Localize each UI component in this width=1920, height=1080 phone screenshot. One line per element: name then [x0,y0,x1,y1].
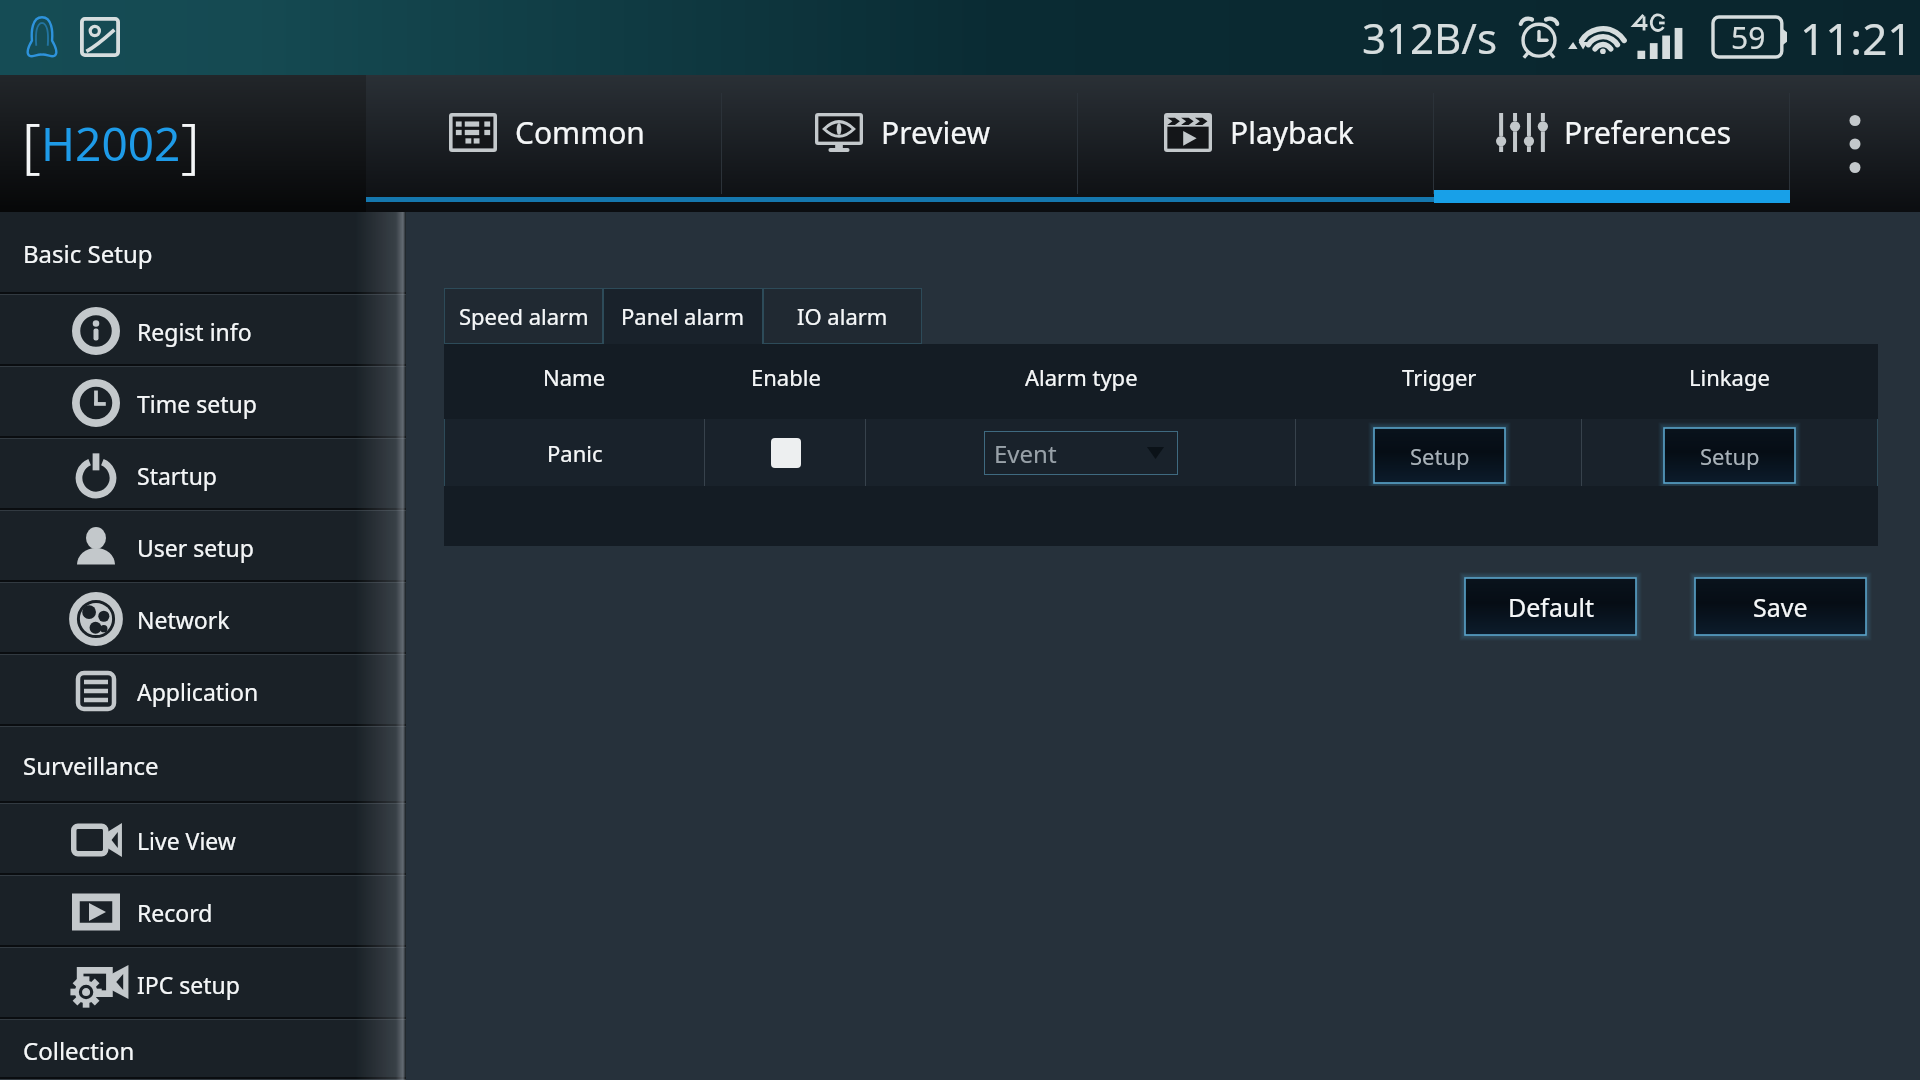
button[interactable]: IPC setup [0,948,406,1020]
button[interactable]: Default [1459,572,1642,641]
staticText: User setup [137,532,254,563]
staticText: [ [22,104,41,183]
staticText: H2002 [41,112,181,175]
staticText: Save [1753,590,1808,624]
staticText: Name [543,362,606,392]
button[interactable]: Alarm type Event [984,431,1178,475]
staticText: Preview [881,112,991,153]
staticText: Speed alarm [459,301,589,331]
button[interactable]: Setup [1658,422,1801,489]
button[interactable]: Application [0,655,406,727]
staticText: ] [181,104,200,183]
staticText: 312B/s [1362,9,1498,66]
button[interactable]: [ [0,75,366,212]
button[interactable]: Save [1689,572,1872,641]
button[interactable]: User setup [0,511,406,583]
button[interactable]: Speed alarm [444,288,603,344]
button[interactable]: Preview [722,75,1078,212]
staticText: IO alarm [797,301,888,331]
button[interactable]: Collection [0,1020,406,1080]
staticText: Enable [751,362,821,392]
staticText: Panic [547,438,603,468]
staticText: Surveillance [23,749,159,782]
staticText: Common [515,112,645,153]
staticText: Network [137,604,230,635]
button[interactable]: Record [0,876,406,948]
button[interactable]: IO alarm [763,288,922,344]
button[interactable]: Surveillance [0,727,406,804]
button[interactable]: Enable Panic alarm [771,438,801,468]
staticText: Record [137,897,213,928]
button[interactable]: Startup [0,439,406,511]
staticText: Panel alarm [621,301,745,331]
staticText: Basic Setup [23,237,153,270]
staticText: Setup [1410,441,1470,471]
button[interactable]: Live View [0,804,406,876]
staticText: Collection [23,1034,135,1067]
staticText: Live View [137,825,236,856]
staticText: 59 [1731,17,1766,57]
staticText: Regist info [137,316,252,347]
staticText: Default [1508,590,1594,624]
staticText: Preferences [1564,112,1732,153]
staticText: Alarm type [1025,362,1138,392]
staticText: Application [137,676,259,707]
button[interactable]: Time setup [0,367,406,439]
staticText: Trigger [1402,362,1477,392]
staticText: IPC setup [137,969,240,1000]
button[interactable]: Basic Setup [0,212,406,295]
button[interactable]: Regist info [0,295,406,367]
staticText: Linkage [1689,362,1770,392]
button[interactable]: More options [1790,75,1920,212]
button[interactable]: Playback [1078,75,1434,212]
staticText: Time setup [137,388,257,419]
button[interactable]: Network [0,583,406,655]
staticText: Startup [137,460,217,491]
staticText: Playback [1230,112,1354,153]
button[interactable]: Preferences [1434,75,1790,212]
button[interactable]: Common [366,75,722,212]
staticText: 11:21 [1800,8,1913,68]
staticText: Event [994,437,1057,470]
button[interactable]: Setup [1368,422,1511,489]
staticText: Setup [1700,441,1760,471]
button[interactable]: Panel alarm [603,288,763,344]
